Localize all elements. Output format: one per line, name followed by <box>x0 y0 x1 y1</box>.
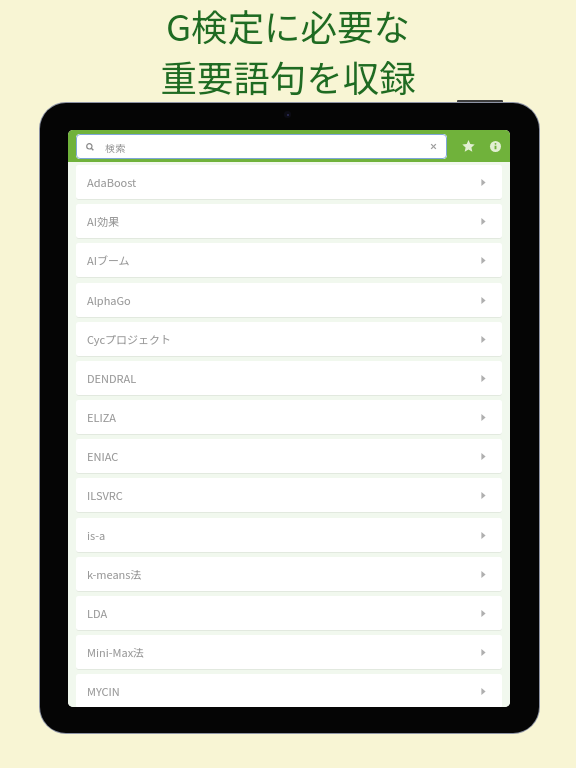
staticText: 検索 <box>105 140 125 154</box>
button[interactable]: is-a <box>68 515 510 554</box>
button[interactable]: DENDRAL <box>68 358 510 397</box>
button[interactable]: Cycプロジェクト <box>68 319 510 358</box>
button[interactable]: ILSVRC <box>68 475 510 514</box>
staticText: AIブーム <box>87 252 130 268</box>
button[interactable]: Mini-Max法 <box>68 632 510 671</box>
staticText: Cycプロジェクト <box>87 331 172 347</box>
button[interactable]: AI効果 <box>68 201 510 240</box>
button[interactable]: Info <box>482 130 509 162</box>
staticText: ILSVRC <box>87 487 123 503</box>
button[interactable]: ENIAC <box>68 436 510 475</box>
button[interactable]: MYCIN <box>68 671 510 707</box>
staticText: ENIAC <box>87 448 119 464</box>
button[interactable]: ELIZA <box>68 397 510 436</box>
button[interactable]: LDA <box>68 593 510 632</box>
staticText: is-a <box>87 527 106 543</box>
button[interactable]: AlphaGo <box>68 280 510 319</box>
button[interactable]: AIブーム <box>68 240 510 279</box>
button[interactable]: Clear search <box>429 142 438 151</box>
staticText: ELIZA <box>87 409 116 425</box>
staticText: DENDRAL <box>87 370 137 386</box>
staticText: LDA <box>87 605 108 621</box>
staticText: AdaBoost <box>87 174 137 190</box>
staticText: Mini-Max法 <box>87 644 145 660</box>
staticText: k-means法 <box>87 566 142 582</box>
button[interactable]: 検索 <box>76 134 447 159</box>
button[interactable]: k-means法 <box>68 554 510 593</box>
staticText: MYCIN <box>87 683 120 699</box>
staticText: AI効果 <box>87 213 119 229</box>
button[interactable]: Favorites <box>455 130 482 162</box>
button[interactable]: AdaBoost <box>68 162 510 201</box>
staticText: AlphaGo <box>87 292 131 308</box>
staticText: G検定に必要な 重要語句を収録 <box>160 0 416 102</box>
